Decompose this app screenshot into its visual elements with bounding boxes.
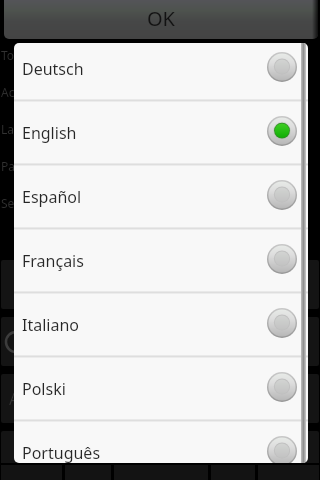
- button[interactable]: OK: [4, 0, 318, 39]
- staticText: Tools: [1, 47, 31, 63]
- button[interactable]: Italiano: [14, 293, 308, 357]
- button[interactable]: English: [14, 101, 308, 165]
- button[interactable]: [1, 317, 319, 366]
- staticText: Português: [22, 442, 267, 463]
- button[interactable]: [1, 431, 319, 480]
- staticText: Español: [22, 186, 267, 208]
- button[interactable]: Tools: [0, 43, 320, 80]
- button[interactable]: Settings: [0, 191, 320, 228]
- staticText: Settings: [1, 195, 47, 211]
- staticText: Français: [22, 250, 267, 272]
- button[interactable]: Français: [14, 229, 308, 293]
- button[interactable]: A: [1, 374, 319, 423]
- button[interactable]: Language: [0, 117, 320, 154]
- button[interactable]: Deutsch: [14, 43, 308, 101]
- staticText: Italiano: [22, 314, 267, 336]
- staticText: Language: [1, 121, 58, 137]
- staticText: Password: [1, 158, 56, 174]
- button[interactable]: Español: [14, 165, 308, 229]
- staticText: English: [22, 122, 267, 144]
- staticText: OK: [147, 5, 175, 32]
- staticText: Deutsch: [22, 58, 267, 80]
- button[interactable]: Password: [0, 154, 320, 191]
- staticText: Polski: [22, 378, 267, 400]
- button[interactable]: [1, 260, 319, 309]
- staticText: A: [9, 388, 20, 410]
- button[interactable]: Polski: [14, 357, 308, 421]
- button[interactable]: Account: [0, 80, 320, 117]
- button[interactable]: Português: [14, 421, 308, 463]
- staticText: Account: [1, 84, 47, 100]
